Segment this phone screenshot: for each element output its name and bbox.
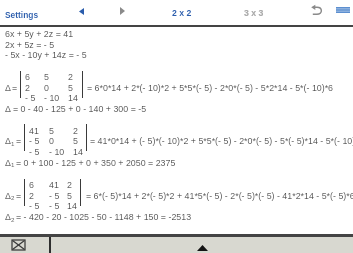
staticText: 2x + 5z = - 5 bbox=[5, 40, 55, 50]
staticText: = 6*(- 5)*14 + 2*(- 5)*2 + 41*5*(- 5) - … bbox=[86, 191, 353, 201]
button[interactable]: 2 x 2 bbox=[166, 2, 198, 20]
staticText: Δ bbox=[5, 191, 11, 201]
staticText: = 0 + 100 - 125 + 0 + 350 + 2050 = 2375 bbox=[16, 158, 176, 168]
staticText: - 5 bbox=[49, 201, 60, 211]
staticText: 2 bbox=[67, 180, 72, 190]
staticText: 14 bbox=[67, 201, 77, 211]
button[interactable]: 3 x 3 bbox=[238, 2, 270, 20]
staticText: 2 bbox=[25, 83, 30, 93]
staticText: 14 bbox=[73, 147, 83, 157]
staticText: 0 bbox=[49, 136, 54, 146]
staticText: = - 420 - 20 - 1025 - 50 - 1148 + 150 = … bbox=[16, 212, 192, 222]
staticText: 41 bbox=[29, 126, 39, 136]
staticText: = bbox=[12, 83, 18, 93]
staticText: 5 bbox=[73, 136, 78, 146]
staticText: Δ = 0 - 40 - 125 + 0 - 140 + 300 = -5 bbox=[5, 104, 147, 114]
button[interactable]: Menu bbox=[331, 1, 352, 19]
staticText: = bbox=[16, 191, 22, 201]
staticText: 1 bbox=[11, 140, 15, 147]
staticText: Δ bbox=[5, 158, 11, 168]
staticText: = 6*0*14 + 2*(- 10)*2 + 5*5*(- 5) - 2*0*… bbox=[87, 83, 334, 93]
staticText: 2 bbox=[11, 194, 15, 201]
staticText: 5 bbox=[49, 126, 54, 136]
staticText: 0 bbox=[44, 83, 49, 93]
staticText: 2 bbox=[29, 191, 34, 201]
staticText: 2 bbox=[73, 126, 78, 136]
staticText: 1 bbox=[11, 161, 15, 168]
staticText: 2 bbox=[68, 72, 73, 82]
button[interactable]: Previous step bbox=[70, 1, 92, 19]
staticText: - 5 bbox=[29, 201, 40, 211]
staticText: - 5 bbox=[25, 93, 36, 103]
staticText: = bbox=[16, 136, 22, 146]
staticText: 5 bbox=[44, 72, 49, 82]
staticText: Δ bbox=[5, 136, 11, 146]
staticText: 5 bbox=[68, 83, 73, 93]
staticText: Settings bbox=[5, 10, 39, 19]
staticText: - 5 bbox=[29, 147, 40, 157]
staticText: - 10 bbox=[44, 93, 60, 103]
staticText: Δ bbox=[5, 83, 11, 93]
staticText: 14 bbox=[68, 93, 78, 103]
staticText: = 41*0*14 + (- 5)*(- 10)*2 + 5*5*(- 5) -… bbox=[90, 136, 353, 146]
staticText: - 10 bbox=[49, 147, 65, 157]
staticText: 3 x 3 bbox=[244, 8, 264, 18]
staticText: - 5 bbox=[49, 191, 60, 201]
button[interactable]: Settings bbox=[1, 2, 45, 20]
button[interactable]: Next step bbox=[110, 1, 132, 19]
staticText: - 5x - 10y + 14z = - 5 bbox=[5, 50, 87, 60]
staticText: 41 bbox=[49, 180, 59, 190]
button[interactable]: Show keypad bbox=[51, 237, 353, 253]
staticText: Δ bbox=[5, 212, 11, 222]
button[interactable]: Undo bbox=[306, 1, 326, 19]
staticText: 6 bbox=[25, 72, 30, 82]
staticText: 5 bbox=[67, 191, 72, 201]
staticText: 6x + 5y + 2z = 41 bbox=[5, 29, 74, 39]
staticText: 2 x 2 bbox=[172, 8, 192, 18]
button[interactable]: Send feedback bbox=[0, 237, 49, 253]
staticText: 6 bbox=[29, 180, 34, 190]
staticText: 2 bbox=[11, 216, 15, 223]
staticText: - 5 bbox=[29, 136, 40, 146]
